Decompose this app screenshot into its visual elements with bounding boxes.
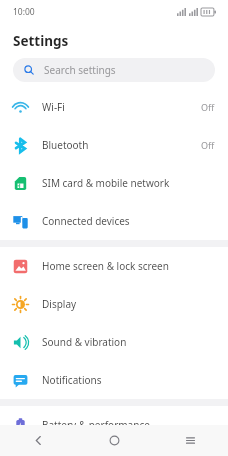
button[interactable]: Notifications	[0, 361, 228, 399]
staticText: Display	[42, 297, 215, 311]
button[interactable]: Bluetooth	[0, 126, 228, 164]
staticText: SIM card & mobile network	[42, 176, 215, 190]
staticText: Search settings	[44, 63, 116, 77]
staticText: Sound & vibration	[42, 335, 215, 349]
staticText: Battery & performance	[42, 418, 215, 432]
staticText: 10:00	[13, 6, 35, 18]
button[interactable]: Sound & vibration	[0, 323, 228, 361]
staticText: Bluetooth	[42, 138, 201, 152]
staticText: Off	[201, 139, 215, 151]
button[interactable]: Display	[0, 285, 228, 323]
button[interactable]: Recent apps	[152, 425, 228, 456]
button[interactable]: SIM card & mobile network	[0, 164, 228, 202]
button[interactable]: Back	[0, 425, 76, 456]
button[interactable]: Connected devices	[0, 202, 228, 240]
staticText: Off	[201, 101, 215, 113]
staticText: Wi-Fi	[42, 100, 201, 114]
staticText: Connected devices	[42, 214, 215, 228]
button[interactable]: Battery & performance	[0, 406, 228, 444]
staticText: Home screen & lock screen	[42, 259, 215, 273]
staticText: Settings	[13, 32, 69, 50]
button[interactable]: Home	[76, 425, 152, 456]
staticText: Notifications	[42, 373, 215, 387]
button[interactable]: Search settings	[13, 58, 215, 82]
button[interactable]: Home screen & lock screen	[0, 247, 228, 285]
button[interactable]: Wi-Fi	[0, 88, 228, 126]
